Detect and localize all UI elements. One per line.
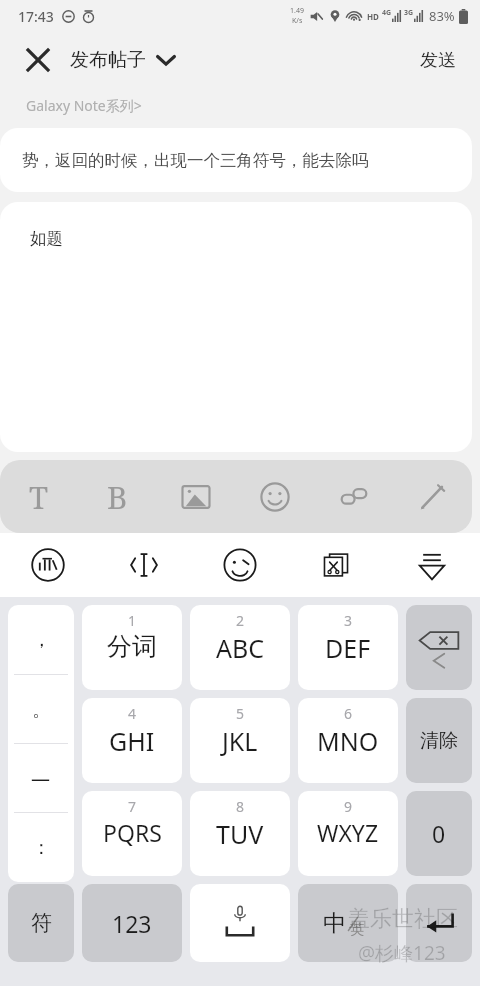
staticText: 9 — [344, 797, 353, 816]
staticText: 83% — [429, 7, 455, 25]
staticText: T — [29, 476, 49, 518]
button[interactable]: 5 — [190, 698, 290, 783]
button[interactable]: 中 — [298, 884, 398, 962]
staticText: 4 — [128, 704, 137, 723]
staticText: 清除 — [420, 729, 458, 753]
button[interactable]: Clipboard — [288, 533, 384, 597]
staticText: 1 — [128, 611, 137, 630]
staticText: — — [31, 766, 51, 792]
button[interactable]: Hide keyboard — [384, 533, 480, 597]
staticText: 如题 — [30, 228, 63, 249]
staticText: 8 — [236, 797, 245, 816]
staticText: DEF — [325, 631, 371, 665]
button[interactable]: ： — [8, 813, 74, 882]
staticText: ， — [32, 628, 51, 652]
staticText: 17:43 — [18, 7, 54, 26]
staticText: 势，返回的时候，出现一个三角符号，能去除吗 — [22, 150, 369, 171]
button[interactable]: Insert image — [156, 460, 235, 533]
button[interactable]: 2 — [190, 605, 290, 690]
staticText: 分词 — [107, 631, 157, 662]
staticText: 发送 — [420, 49, 456, 72]
button[interactable]: 6 — [298, 698, 398, 783]
button[interactable]: Backspace — [406, 605, 472, 690]
button[interactable]: 1 — [82, 605, 182, 690]
button[interactable]: 发布帖子 — [70, 48, 176, 72]
button[interactable]: Input method — [0, 533, 96, 597]
button[interactable]: 8 — [190, 791, 290, 876]
staticText: 1.49 — [290, 6, 304, 16]
button[interactable]: Text style — [0, 460, 78, 533]
staticText: 123 — [112, 908, 152, 939]
staticText: 0 — [432, 818, 446, 849]
button[interactable]: 。 — [8, 675, 74, 744]
staticText: 5 — [236, 704, 245, 723]
button[interactable]: 9 — [298, 791, 398, 876]
staticText: ： — [32, 836, 51, 860]
button[interactable]: 123 — [82, 884, 182, 962]
staticText: 3 — [344, 611, 353, 630]
button[interactable]: Insert emoji — [235, 460, 314, 533]
button[interactable]: Insert link — [314, 460, 393, 533]
staticText: Galaxy Note系列> — [26, 96, 142, 115]
button[interactable]: 符 — [8, 884, 74, 962]
staticText: 2 — [236, 611, 245, 630]
staticText: PQRS — [103, 817, 162, 848]
staticText: 6 — [344, 704, 353, 723]
staticText: 。 — [32, 698, 51, 722]
staticText: 盖乐世社区 — [348, 905, 458, 933]
staticText: JKL — [222, 724, 258, 758]
button[interactable]: — — [8, 744, 74, 813]
button[interactable]: 3 — [298, 605, 398, 690]
staticText: 中 — [323, 909, 346, 938]
button[interactable]: 势，返回的时候，出现一个三角符号，能去除吗 — [0, 128, 472, 192]
staticText: 3G — [404, 8, 414, 18]
button[interactable]: Bold — [78, 460, 156, 533]
staticText: 7 — [128, 797, 137, 816]
staticText: MNO — [317, 724, 379, 758]
staticText: B — [107, 476, 128, 518]
button[interactable]: 清除 — [406, 698, 472, 783]
staticText: 符 — [31, 910, 52, 936]
button[interactable]: 4 — [82, 698, 182, 783]
button[interactable]: Emoji — [192, 533, 288, 597]
button[interactable]: Enter — [406, 884, 472, 962]
staticText: 4G — [382, 8, 392, 18]
button[interactable]: 7 — [82, 791, 182, 876]
button[interactable]: 发送 — [414, 43, 462, 78]
button[interactable]: ， — [8, 605, 74, 675]
staticText: 发布帖子 — [70, 48, 146, 72]
staticText: HD — [367, 11, 379, 22]
button[interactable]: Galaxy Note系列> — [0, 88, 480, 122]
staticText: K/s — [292, 16, 303, 26]
staticText: 英 — [350, 921, 364, 939]
staticText: WXYZ — [317, 817, 379, 848]
staticText: @杉峰123 — [358, 940, 446, 966]
staticText: GHI — [109, 724, 155, 758]
button[interactable]: Draw — [393, 460, 472, 533]
button[interactable]: 如题 — [0, 202, 472, 452]
staticText: ABC — [216, 631, 265, 665]
staticText: TUV — [216, 817, 264, 851]
button[interactable]: Close — [16, 38, 60, 82]
button[interactable]: 0 — [406, 791, 472, 876]
button[interactable] — [190, 884, 290, 962]
button[interactable]: Move cursor — [96, 533, 192, 597]
